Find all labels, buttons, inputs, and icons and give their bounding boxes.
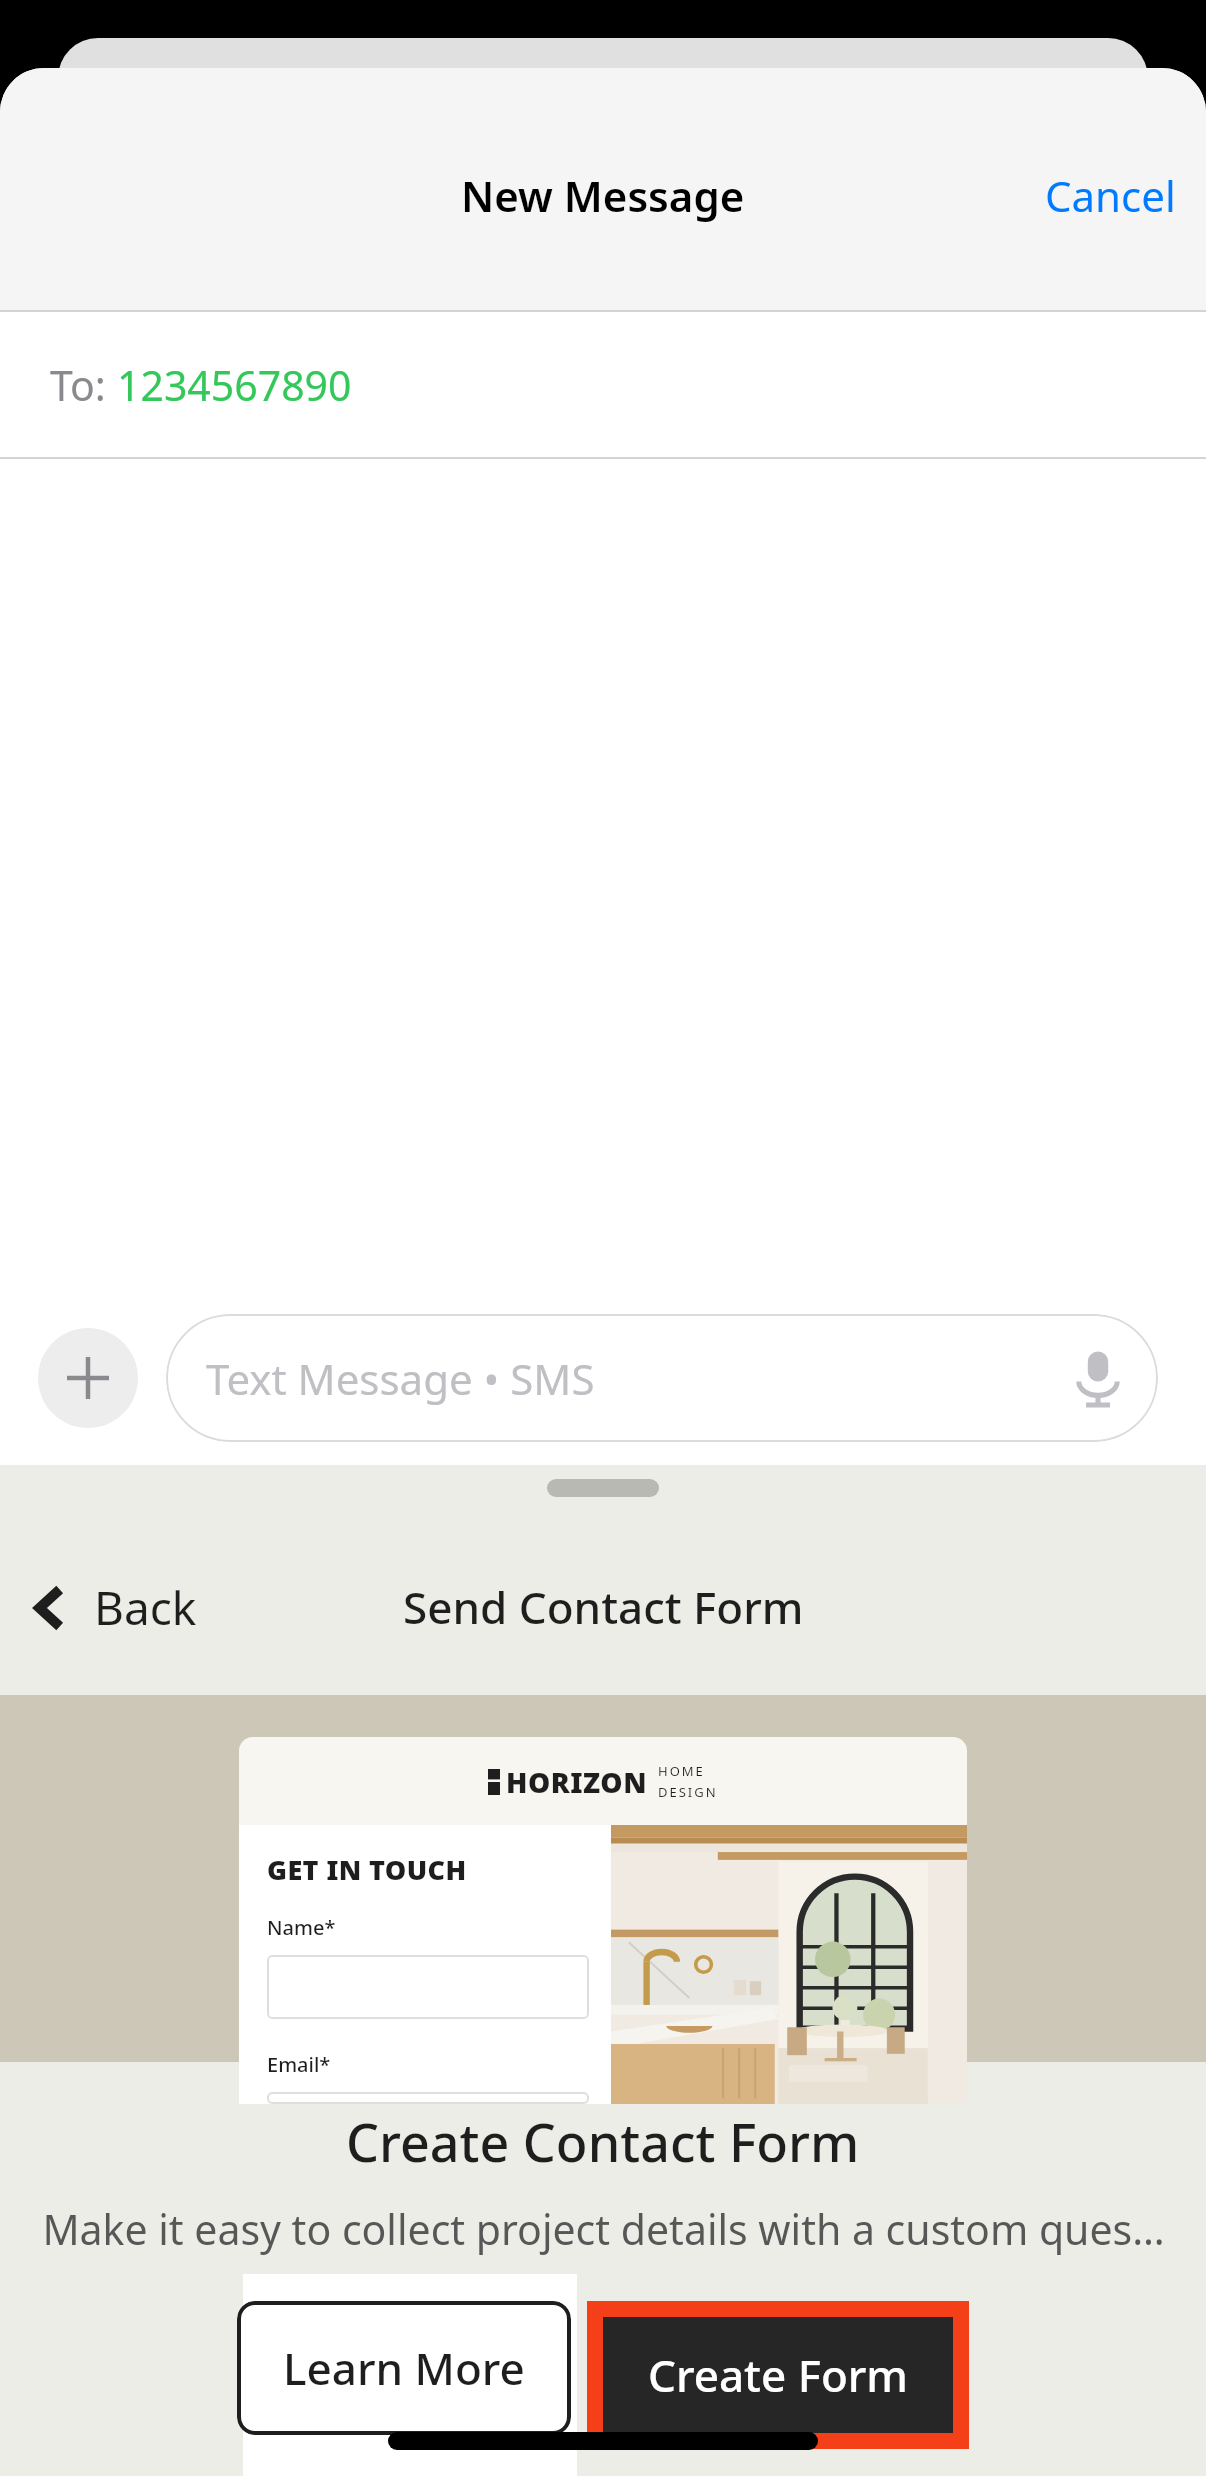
button[interactable]: Dictate [1068, 1348, 1128, 1408]
staticText: Back [94, 1576, 197, 1639]
staticText: Email* [267, 2051, 331, 2078]
staticText: Create Contact Form [346, 2106, 860, 2177]
staticText: Send Contact Form [403, 1577, 804, 1637]
button[interactable]: Back [14, 1560, 211, 1655]
staticText: HORIZON [506, 1763, 648, 1801]
staticText: Learn More [283, 2338, 525, 2398]
staticText: Name* [267, 1914, 336, 1941]
button[interactable]: Add attachment [38, 1328, 138, 1428]
button[interactable]: Cancel [1015, 149, 1206, 242]
staticText: 1234567890 [117, 357, 352, 413]
button[interactable]: Learn More [237, 2301, 571, 2435]
button[interactable]: To: [0, 312, 1206, 457]
staticText: DESIGN [658, 1783, 718, 1801]
button[interactable]: Text Message • SMS [166, 1314, 1158, 1442]
staticText: Cancel [1045, 167, 1176, 224]
staticText: Make it easy to collect project details … [42, 2201, 1165, 2257]
staticText: GET IN TOUCH [267, 1851, 467, 1888]
button[interactable]: Create Form [603, 2317, 953, 2433]
staticText: Create Form [648, 2345, 909, 2405]
staticText: HOME [658, 1762, 705, 1780]
staticText: To: [50, 357, 117, 413]
staticText: Text Message • SMS [206, 1350, 595, 1407]
staticText: New Message [461, 167, 745, 224]
